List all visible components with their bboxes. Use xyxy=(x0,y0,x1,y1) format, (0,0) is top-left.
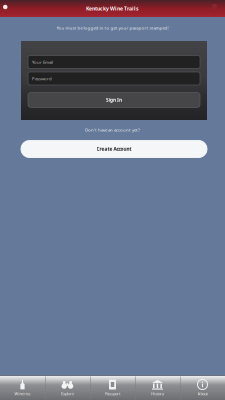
button[interactable]: Explore xyxy=(45,375,90,400)
staticText: Create Account xyxy=(96,146,131,152)
staticText: Don't have an account yet? xyxy=(85,127,140,133)
staticText: Passport xyxy=(105,391,120,396)
staticText: About xyxy=(197,391,207,396)
button[interactable]: Create Account xyxy=(21,140,207,157)
button[interactable]: Wineries xyxy=(0,375,45,400)
staticText: Wineries xyxy=(14,391,30,396)
staticText: Kentucky Wine Trails xyxy=(86,5,139,12)
button[interactable]: Passport xyxy=(90,375,135,400)
staticText: Sign In xyxy=(106,97,122,103)
staticText: Password xyxy=(32,76,52,81)
staticText: Explore xyxy=(61,391,74,396)
button[interactable]: Sign In xyxy=(28,92,200,107)
staticText: History xyxy=(151,391,164,396)
staticText: You must be logged in to get your passpo… xyxy=(56,25,168,31)
button[interactable]: History xyxy=(135,375,180,400)
button[interactable]: About xyxy=(180,375,225,400)
staticText: Your Email xyxy=(32,59,53,65)
